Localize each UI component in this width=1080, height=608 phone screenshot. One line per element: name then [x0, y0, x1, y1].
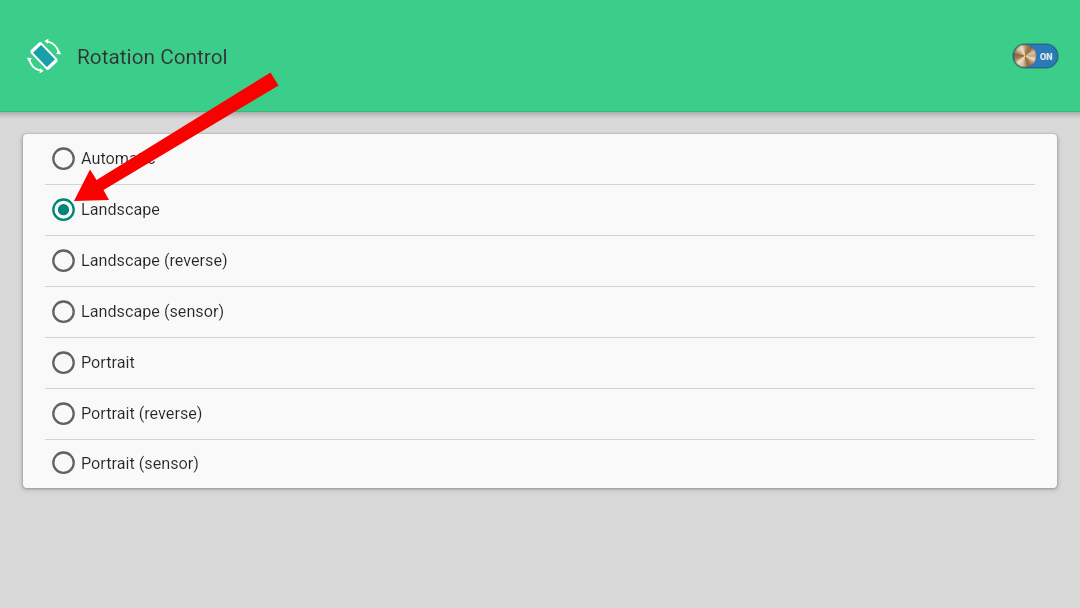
staticText: Portrait (sensor)	[81, 454, 199, 473]
staticText: Automatic	[81, 149, 156, 168]
staticText: Portrait (reverse)	[81, 404, 203, 423]
staticText: ON	[1040, 52, 1053, 63]
button[interactable]: Landscape (reverse)	[23, 236, 1057, 287]
button[interactable]: Landscape	[23, 185, 1057, 236]
staticText: Landscape	[81, 200, 160, 219]
button[interactable]: Portrait (sensor)	[23, 440, 1057, 488]
button[interactable]: Automatic	[23, 134, 1057, 185]
button[interactable]: Portrait	[23, 338, 1057, 389]
button[interactable]: Portrait (reverse)	[23, 389, 1057, 440]
staticText: Landscape (sensor)	[81, 302, 225, 321]
button[interactable]: Rotation lock toggle, on	[1013, 44, 1058, 68]
staticText: Portrait	[81, 353, 135, 372]
button[interactable]: Landscape (sensor)	[23, 287, 1057, 338]
staticText: Rotation Control	[77, 45, 228, 69]
staticText: Landscape (reverse)	[81, 251, 228, 270]
